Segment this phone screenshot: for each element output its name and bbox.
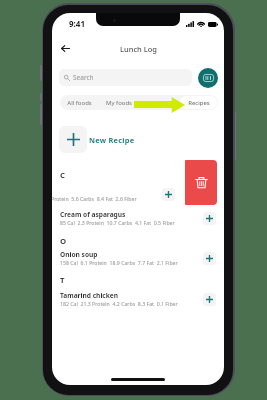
staticText: Recipes — [188, 99, 210, 107]
staticText: My foods — [106, 99, 132, 107]
button[interactable]: Scan barcode — [198, 68, 218, 88]
button[interactable]: My foods — [100, 96, 137, 109]
staticText: 158 Cal 6.1 Protein 18.9 Carbs 7.7 Fat 2… — [60, 259, 178, 266]
staticText: Lunch Log — [120, 44, 157, 54]
staticText: 182 Cal 21.3 Protein 4.2 Carbs 8.3 Fat 0… — [60, 300, 178, 307]
button[interactable]: Back — [55, 38, 75, 58]
button[interactable]: Add — [203, 212, 216, 225]
staticText: O — [60, 236, 67, 247]
button[interactable]: Add — [203, 252, 216, 265]
button[interactable]: Delete — [185, 160, 217, 205]
staticText: Cream of asparagus — [60, 210, 126, 219]
button[interactable]: New Recipe — [59, 126, 135, 153]
staticText: Search — [73, 73, 94, 82]
button[interactable]: Tamarind chicken — [52, 288, 224, 310]
staticText: Favorites — [146, 99, 172, 107]
staticText: All foods — [67, 99, 92, 107]
button[interactable]: Onion soup — [52, 247, 224, 269]
button[interactable]: Add — [203, 293, 216, 306]
button[interactable]: Add — [162, 188, 175, 201]
staticText: 85 Cal 2.3 Protein 10.7 Carbs 4.1 Fat 0.… — [60, 219, 175, 226]
button[interactable]: Cream of asparagus — [52, 207, 224, 229]
staticText: C — [60, 170, 66, 181]
staticText: T — [60, 275, 65, 286]
button[interactable]: Search — [59, 69, 192, 86]
staticText: Onion soup — [60, 250, 98, 259]
button[interactable]: All foods — [61, 96, 98, 109]
staticText: New Recipe — [89, 135, 135, 145]
staticText: Protein 5.6 Carbs 8.4 Fat 2.6 Fiber — [52, 195, 137, 202]
button[interactable]: Recipes — [180, 96, 217, 109]
staticText: 9:41 — [69, 18, 85, 29]
button[interactable]: Favorites — [139, 96, 178, 109]
staticText: Tamarind chicken — [60, 291, 119, 300]
